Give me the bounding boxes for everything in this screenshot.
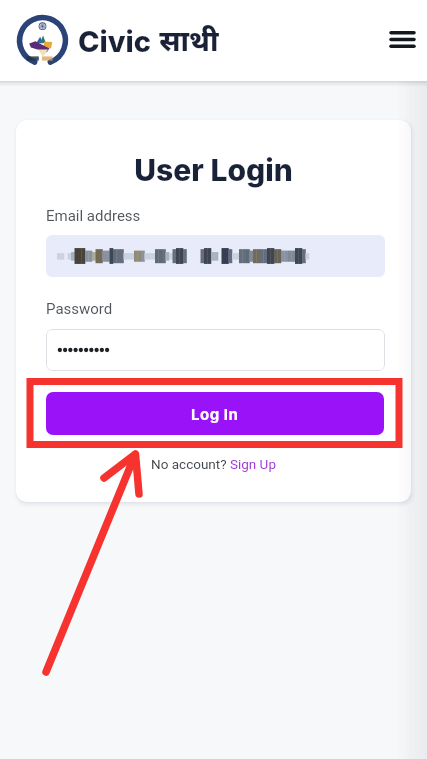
button[interactable] (46, 235, 385, 277)
button[interactable]: No account? Sign Up (16, 456, 411, 472)
button[interactable]: Log In (46, 392, 384, 435)
button[interactable]: Menu (380, 17, 424, 61)
staticText: Email address (46, 207, 141, 225)
staticText: Log In (191, 405, 239, 423)
button[interactable] (46, 329, 385, 371)
staticText: Civic (78, 24, 152, 59)
staticText: साथी (152, 21, 219, 59)
staticText: Password (46, 300, 113, 318)
staticText: User Login (16, 152, 411, 188)
